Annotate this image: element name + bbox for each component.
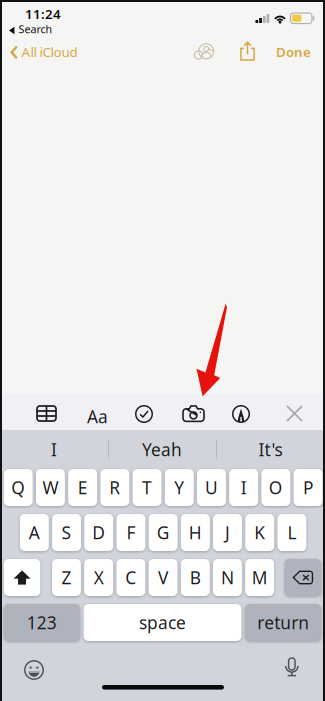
staticText: H xyxy=(189,521,202,544)
staticText: F xyxy=(126,521,135,544)
button[interactable]: Close keyboard xyxy=(281,400,308,427)
button[interactable]: N xyxy=(213,559,242,596)
staticText: M xyxy=(252,566,268,589)
button[interactable]: K xyxy=(245,514,274,551)
staticText: It's xyxy=(258,438,282,461)
button[interactable]: E xyxy=(68,469,97,506)
staticText: X xyxy=(94,566,104,589)
button[interactable]: W xyxy=(36,469,65,506)
staticText: Y xyxy=(174,476,184,499)
button[interactable]: U xyxy=(197,469,226,506)
staticText: Search xyxy=(18,22,52,36)
button[interactable]: M xyxy=(245,559,274,596)
button[interactable]: V xyxy=(149,559,177,596)
button[interactable]: O xyxy=(261,469,290,506)
staticText: R xyxy=(109,476,120,499)
button[interactable]: Table xyxy=(31,400,62,427)
staticText: C xyxy=(125,566,136,589)
staticText: K xyxy=(254,521,265,544)
button[interactable]: All iCloud xyxy=(5,37,83,67)
staticText: I xyxy=(51,438,57,461)
button[interactable]: Q xyxy=(4,469,33,506)
staticText: space xyxy=(139,611,186,634)
staticText: W xyxy=(42,476,58,499)
button[interactable]: F xyxy=(116,514,145,551)
staticText: Yeah xyxy=(142,438,182,461)
staticText: L xyxy=(287,521,296,544)
button[interactable]: L xyxy=(277,514,306,551)
button[interactable]: I xyxy=(0,431,108,468)
button[interactable]: Numbers xyxy=(4,604,80,641)
staticText: A xyxy=(29,521,40,544)
staticText: S xyxy=(61,521,71,544)
button[interactable]: I xyxy=(229,469,258,506)
button[interactable]: space xyxy=(84,604,241,641)
staticText: Q xyxy=(11,476,25,499)
staticText: E xyxy=(78,476,88,499)
staticText: P xyxy=(303,476,313,499)
button[interactable]: C xyxy=(116,559,145,596)
button[interactable]: It's xyxy=(216,431,325,468)
staticText: J xyxy=(225,521,230,544)
button[interactable]: X xyxy=(84,559,113,596)
staticText: G xyxy=(157,521,170,544)
button[interactable]: Done xyxy=(269,37,318,67)
button[interactable]: B xyxy=(181,559,210,596)
button[interactable]: Markup xyxy=(226,399,256,429)
button[interactable]: Dictate xyxy=(279,651,305,682)
button[interactable]: Share xyxy=(232,36,263,66)
staticText: V xyxy=(158,566,168,589)
staticText: Aa xyxy=(87,405,108,428)
staticText: O xyxy=(269,476,283,499)
button[interactable]: return xyxy=(245,604,321,641)
staticText: 11:24 xyxy=(25,5,61,23)
button[interactable]: Format xyxy=(81,398,114,435)
staticText: U xyxy=(205,476,218,499)
button[interactable]: Delete xyxy=(285,559,321,596)
staticText: I xyxy=(241,476,247,499)
staticText: N xyxy=(221,566,234,589)
button[interactable]: Checklist xyxy=(129,399,159,429)
staticText: T xyxy=(142,476,152,499)
button[interactable]: A xyxy=(20,514,49,551)
button[interactable]: Camera xyxy=(177,400,210,427)
button[interactable]: D xyxy=(84,514,113,551)
button[interactable]: T xyxy=(133,469,161,506)
staticText: Z xyxy=(61,566,71,589)
button[interactable]: Z xyxy=(52,559,81,596)
button[interactable]: Y xyxy=(165,469,194,506)
button[interactable]: G xyxy=(149,514,178,551)
button[interactable]: Shift xyxy=(4,559,40,596)
button[interactable]: P xyxy=(294,469,322,506)
staticText: return xyxy=(257,611,309,634)
button[interactable]: Yeah xyxy=(108,431,216,468)
staticText: All iCloud xyxy=(21,43,77,61)
button[interactable]: S xyxy=(52,514,81,551)
staticText: B xyxy=(190,566,201,589)
button[interactable]: J xyxy=(213,514,242,551)
button[interactable]: H xyxy=(181,514,210,551)
button[interactable]: Emoji xyxy=(18,654,50,686)
button[interactable]: Add People xyxy=(188,38,220,65)
staticText: 123 xyxy=(27,611,57,634)
staticText: D xyxy=(92,521,105,544)
button[interactable]: R xyxy=(100,469,129,506)
staticText: Done xyxy=(276,43,311,61)
